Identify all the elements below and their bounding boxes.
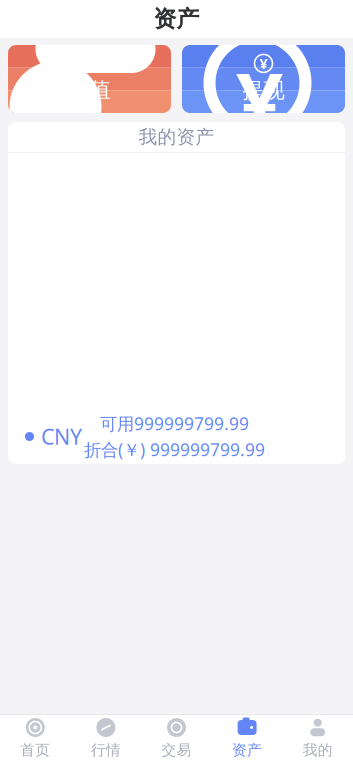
button[interactable]: 首页 — [0, 715, 71, 761]
staticText: 首页 — [20, 741, 50, 759]
staticText: 资产 — [232, 741, 262, 759]
staticText: 可用999999799.99 — [100, 412, 249, 435]
button[interactable]: ¥ — [182, 45, 345, 113]
staticText: 充值 — [68, 77, 110, 103]
button[interactable]: 充值 — [8, 45, 171, 113]
staticText: 折合(￥) 999999799.99 — [84, 438, 265, 461]
staticText: CNY — [41, 422, 82, 451]
button[interactable]: CNY — [8, 409, 345, 464]
staticText: ¥ — [259, 54, 267, 73]
staticText: 我的资产 — [138, 125, 214, 148]
staticText: 资产 — [153, 5, 199, 33]
staticText: 提现 — [242, 77, 284, 104]
button[interactable]: 我的 — [282, 715, 353, 761]
staticText: 我的 — [303, 741, 333, 759]
staticText: 行情 — [91, 741, 121, 759]
button[interactable]: 行情 — [71, 715, 141, 761]
button[interactable]: 资产 — [212, 715, 282, 761]
staticText: 交易 — [161, 741, 191, 759]
staticText: ¥ — [236, 46, 283, 156]
button[interactable]: 交易 — [141, 715, 212, 761]
